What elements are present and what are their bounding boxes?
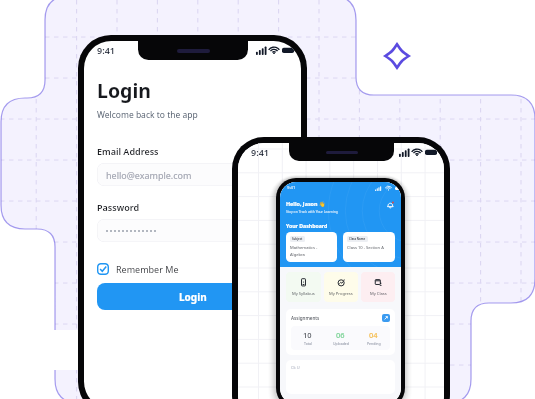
button[interactable] bbox=[97, 219, 288, 242]
button[interactable]: Login bbox=[97, 283, 288, 310]
staticText: Login bbox=[97, 77, 151, 104]
staticText: 04 bbox=[369, 330, 378, 340]
button[interactable]: Notifications bbox=[386, 200, 395, 209]
button[interactable]: My Progress bbox=[324, 272, 358, 302]
staticText: Remember Me bbox=[116, 263, 179, 275]
button[interactable]: hello@example.com bbox=[97, 163, 288, 186]
staticText: Password bbox=[97, 201, 140, 213]
staticText: Mathematics - Algebra bbox=[290, 245, 318, 257]
button[interactable]: Class Name bbox=[343, 232, 395, 262]
staticText: Class Name bbox=[349, 237, 366, 241]
staticText: Stay on Track with Your Learning bbox=[286, 209, 338, 214]
staticText: 9:41 bbox=[97, 44, 115, 56]
button[interactable]: My Class bbox=[361, 272, 395, 302]
staticText: Class 10 - Section A bbox=[347, 245, 384, 251]
staticText: Login bbox=[179, 290, 207, 304]
button[interactable]: My Syllabus bbox=[286, 272, 321, 302]
staticText: 10 bbox=[303, 330, 312, 340]
staticText: Uploaded bbox=[333, 341, 349, 346]
staticText: Email Address bbox=[97, 145, 159, 157]
staticText: My Progress bbox=[329, 291, 353, 297]
button[interactable]: Remember Me bbox=[97, 263, 179, 275]
staticText: My Class bbox=[370, 291, 387, 297]
staticText: 9:41 bbox=[251, 146, 269, 158]
staticText: Ck U bbox=[291, 365, 300, 370]
staticText: Your Dashboard bbox=[286, 222, 328, 229]
button[interactable]: Subject bbox=[286, 232, 337, 262]
staticText: hello@example.com bbox=[106, 169, 192, 181]
staticText: Subject bbox=[292, 237, 303, 241]
staticText: 06 bbox=[336, 330, 345, 340]
button[interactable]: Open assignments bbox=[382, 314, 390, 322]
staticText: Pending bbox=[367, 341, 381, 346]
staticText: Hello, Jason 👋 bbox=[286, 200, 326, 207]
staticText: 9:41 bbox=[287, 185, 296, 191]
staticText: My Syllabus bbox=[292, 291, 315, 297]
staticText: Assignments bbox=[291, 315, 320, 321]
staticText: Welcome back to the app bbox=[97, 109, 198, 121]
staticText: Total bbox=[304, 341, 312, 346]
